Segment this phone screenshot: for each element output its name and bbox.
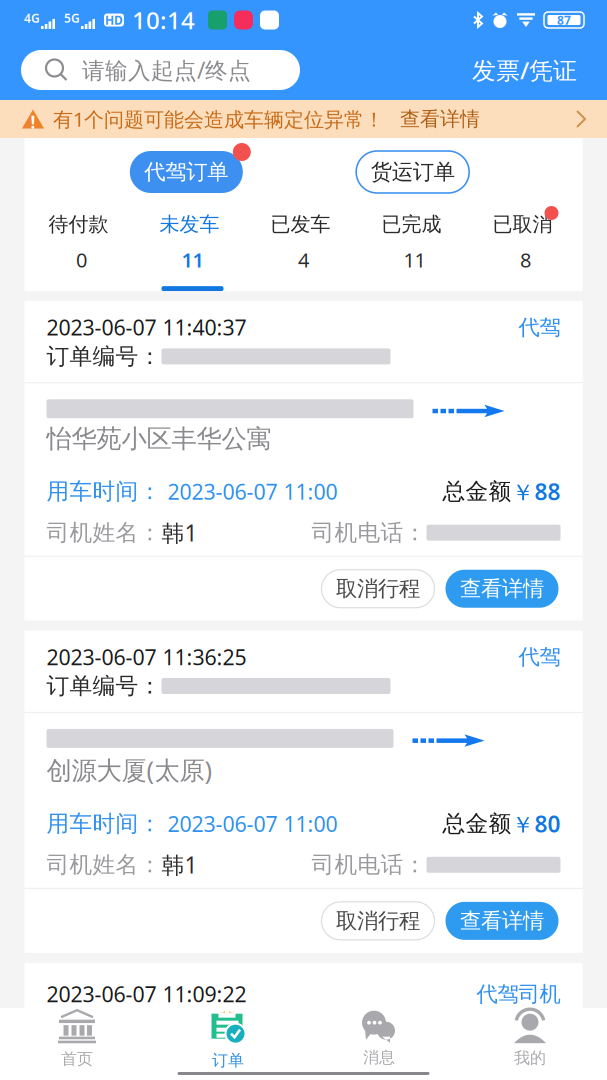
- staticText: 韩1: [161, 518, 197, 548]
- staticText: 10:14: [132, 4, 195, 36]
- staticText: 消息: [363, 1048, 395, 1067]
- button[interactable]: 我的: [454, 1007, 605, 1071]
- staticText: 总金额: [442, 478, 511, 505]
- button[interactable]: 请输入起点/终点: [21, 50, 300, 90]
- staticText: 代驾: [518, 644, 560, 670]
- staticText: 已完成: [381, 212, 441, 237]
- staticText: 已取消: [492, 212, 552, 237]
- staticText: 我的: [514, 1048, 546, 1068]
- staticText: 司机电话：: [311, 851, 426, 879]
- staticText: 2023-06-07 11:00: [167, 477, 337, 506]
- staticText: 怡华苑小区丰华公寓: [46, 423, 271, 454]
- button[interactable]: 查看详情: [445, 902, 558, 940]
- button[interactable]: 首页: [1, 1007, 152, 1071]
- button[interactable]: 已取消: [470, 206, 581, 291]
- staticText: ￥88: [511, 476, 560, 507]
- staticText: 查看详情: [460, 908, 544, 934]
- button[interactable]: 取消行程: [321, 570, 434, 608]
- button[interactable]: 取消行程: [321, 902, 434, 940]
- staticText: 代驾: [518, 314, 560, 340]
- staticText: 代驾司机: [476, 981, 560, 1007]
- staticText: 首页: [61, 1049, 93, 1069]
- staticText: 5G: [64, 10, 80, 26]
- staticText: 订单编号：: [46, 342, 161, 370]
- staticText: 订单: [212, 1051, 244, 1070]
- staticText: 用车时间：: [46, 478, 161, 505]
- staticText: !: [30, 110, 35, 133]
- staticText: 2023-06-07 11:36:25: [46, 643, 246, 671]
- staticText: 取消行程: [336, 908, 420, 934]
- staticText: 司机姓名：: [46, 519, 161, 547]
- staticText: 4G: [24, 10, 40, 26]
- staticText: 司机姓名：: [46, 851, 161, 879]
- button[interactable]: 查看详情: [445, 570, 558, 608]
- staticText: 代驾订单: [144, 159, 228, 185]
- staticText: 8: [520, 247, 531, 273]
- staticText: 4: [298, 247, 309, 273]
- staticText: 取消行程: [336, 576, 420, 602]
- staticText: 87: [557, 12, 571, 28]
- staticText: 韩1: [161, 850, 197, 880]
- staticText: 查看详情: [460, 576, 544, 602]
- staticText: 总金额: [442, 810, 511, 837]
- staticText: 11: [181, 247, 203, 273]
- button[interactable]: 货运订单: [356, 143, 477, 193]
- staticText: 订单编号：: [46, 672, 161, 700]
- staticText: 用车时间：: [46, 810, 161, 837]
- staticText: ￥80: [511, 808, 560, 839]
- button[interactable]: !: [0, 100, 607, 138]
- staticText: 2023-06-07 11:09:22: [46, 980, 246, 1008]
- staticText: 请输入起点/终点: [82, 55, 251, 85]
- staticText: 创源大厦(太原): [46, 753, 212, 786]
- staticText: 待付款: [48, 212, 108, 237]
- button[interactable]: 已完成: [359, 206, 470, 291]
- staticText: 2023-06-07 11:00: [167, 809, 337, 838]
- button[interactable]: 待付款: [26, 206, 137, 291]
- button[interactable]: 订单: [152, 1007, 303, 1071]
- staticText: 未发车: [159, 212, 219, 237]
- button[interactable]: 消息: [303, 1007, 454, 1071]
- staticText: 有1个问题可能会造成车辆定位异常！: [53, 106, 384, 132]
- staticText: 发票/凭证: [472, 54, 577, 86]
- staticText: 查看详情: [400, 107, 480, 131]
- staticText: 0: [76, 247, 87, 273]
- button[interactable]: 代驾订单: [130, 143, 251, 193]
- button[interactable]: 已发车: [248, 206, 359, 291]
- staticText: 2023-06-07 11:40:37: [46, 313, 246, 341]
- staticText: 司机电话：: [311, 519, 426, 547]
- button[interactable]: 发票/凭证: [467, 49, 582, 91]
- staticText: 货运订单: [371, 159, 455, 185]
- button[interactable]: 未发车: [137, 206, 248, 291]
- staticText: HD: [105, 12, 123, 28]
- staticText: 已发车: [270, 212, 330, 237]
- staticText: 11: [403, 247, 425, 273]
